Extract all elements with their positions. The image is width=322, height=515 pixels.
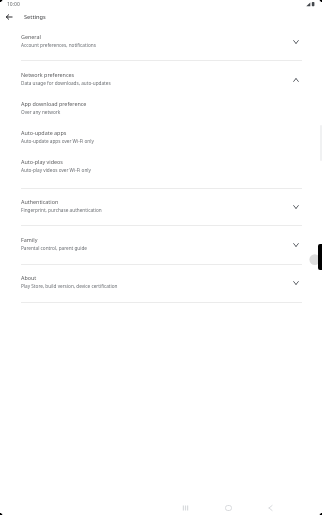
staticText: About	[21, 274, 37, 281]
button[interactable]: Expand	[288, 199, 304, 215]
staticText: Fingerprint, purchase authentication	[21, 207, 102, 213]
button[interactable]: Family	[0, 231, 322, 255]
staticText: Settings	[24, 13, 46, 21]
button[interactable]: Expand	[288, 275, 304, 291]
staticText: Parental control, parent guide	[21, 245, 87, 251]
staticText: Auto-play videos over Wi-Fi only	[21, 167, 91, 173]
staticText: Auto-update apps over Wi-Fi only	[21, 138, 94, 144]
button[interactable]: Auto-play videos	[0, 153, 322, 177]
staticText: Play Store, build version, device certif…	[21, 283, 118, 289]
staticText: Auto-play videos	[21, 158, 63, 165]
staticText: App download preference	[21, 100, 87, 107]
button[interactable]: Back	[0, 8, 18, 26]
button[interactable]: Authentication	[0, 193, 322, 217]
staticText: General	[21, 33, 41, 40]
button[interactable]: Recents	[174, 496, 197, 515]
staticText: 10:00	[7, 1, 20, 8]
staticText: Data usage for downloads, auto-updates	[21, 80, 111, 86]
staticText: Family	[21, 236, 38, 243]
staticText: Authentication	[21, 198, 59, 205]
button[interactable]: Network preferences	[0, 66, 322, 90]
button[interactable]: About	[0, 269, 322, 293]
button[interactable]: Expand	[288, 34, 304, 50]
staticText: Over any network	[21, 109, 61, 115]
button[interactable]: Collapse	[288, 72, 304, 88]
button[interactable]: Expand	[288, 237, 304, 253]
staticText: Auto-update apps	[21, 129, 67, 136]
staticText: Account preferences, notifications	[21, 42, 96, 48]
button[interactable]: General	[0, 28, 322, 52]
button[interactable]: Back	[259, 496, 282, 515]
button[interactable]: App download preference	[0, 95, 322, 119]
button[interactable]: Auto-update apps	[0, 124, 322, 148]
staticText: Network preferences	[21, 71, 75, 78]
button[interactable]: Home	[217, 496, 240, 515]
